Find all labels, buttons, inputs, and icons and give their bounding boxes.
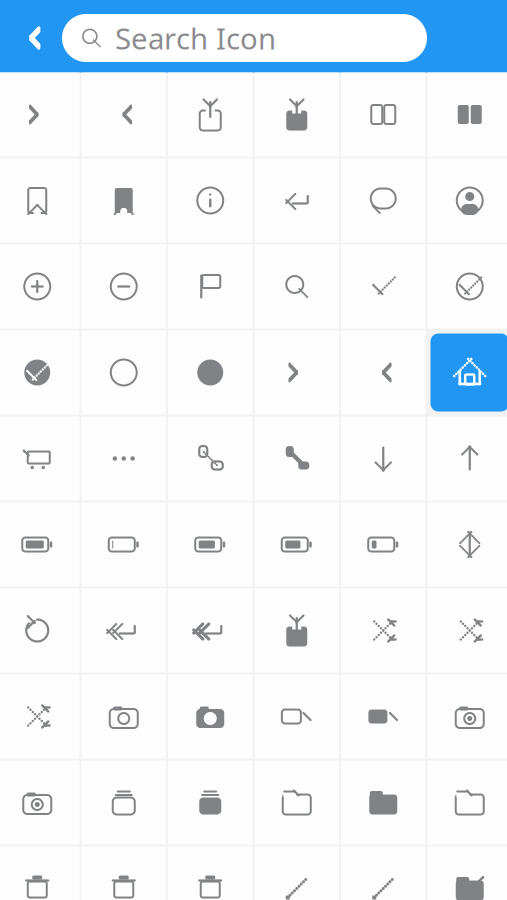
button[interactable]: Camera <box>0 760 79 844</box>
button[interactable]: Chevron left <box>254 330 339 414</box>
button[interactable]: Refresh <box>0 588 79 672</box>
button[interactable]: More <box>81 416 166 500</box>
button[interactable]: Folder <box>427 760 507 844</box>
button[interactable]: Share <box>254 72 339 156</box>
button[interactable]: Shuffle <box>341 588 425 672</box>
button[interactable]: Flag <box>168 244 252 328</box>
button[interactable]: Phone <box>168 416 252 500</box>
button[interactable]: Book <box>427 72 507 156</box>
button[interactable]: Battery <box>341 502 425 586</box>
button[interactable]: Bookmark <box>0 158 79 242</box>
button[interactable]: Reply <box>254 158 339 242</box>
button[interactable]: Arrow down <box>341 416 425 500</box>
button[interactable]: Folder <box>254 760 339 844</box>
button[interactable]: Arrow up <box>427 416 507 500</box>
button[interactable]: Bookmark <box>81 158 166 242</box>
button[interactable]: Phone <box>254 416 339 500</box>
button[interactable]: Cart <box>0 416 79 500</box>
button[interactable]: Share <box>168 72 252 156</box>
button[interactable]: Trash <box>168 846 252 900</box>
button[interactable]: Info <box>168 158 252 242</box>
button[interactable]: Battery <box>81 502 166 586</box>
button[interactable]: Chevron right <box>81 72 166 156</box>
button[interactable]: Edit <box>341 846 425 900</box>
button[interactable]: Bluetooth <box>427 502 507 586</box>
button[interactable]: Book <box>341 72 425 156</box>
button[interactable]: Profile <box>427 158 507 242</box>
button[interactable]: Camera <box>168 674 252 758</box>
button[interactable]: Remove <box>81 244 166 328</box>
button[interactable]: Shuffle <box>427 588 507 672</box>
button[interactable]: Search Icon <box>62 14 427 62</box>
button[interactable]: Battery <box>168 502 252 586</box>
button[interactable]: Trash <box>81 846 166 900</box>
button[interactable]: Circle <box>168 330 252 414</box>
button[interactable]: Video <box>254 674 339 758</box>
button[interactable]: Chevron left <box>0 72 79 156</box>
button[interactable]: Add <box>0 244 79 328</box>
button[interactable]: Battery <box>0 502 79 586</box>
button[interactable]: Shuffle <box>0 674 79 758</box>
button[interactable]: Camera <box>81 674 166 758</box>
button[interactable]: Edit <box>254 846 339 900</box>
button[interactable]: Circle <box>81 330 166 414</box>
button[interactable]: Check <box>0 330 79 414</box>
button[interactable]: Search <box>254 244 339 328</box>
button[interactable]: Archive <box>168 760 252 844</box>
button[interactable]: Archive <box>81 760 166 844</box>
button[interactable]: Video <box>341 674 425 758</box>
button[interactable]: Check <box>341 244 425 328</box>
button[interactable]: Folder <box>341 760 425 844</box>
button[interactable]: Edit folder <box>427 846 507 900</box>
button[interactable]: Reply all <box>168 588 252 672</box>
button[interactable]: Trash <box>0 846 79 900</box>
button[interactable]: Reply all <box>81 588 166 672</box>
button[interactable]: Home <box>427 330 507 414</box>
button[interactable]: Chevron right <box>341 330 425 414</box>
button[interactable]: Battery <box>254 502 339 586</box>
staticText: Search Icon <box>115 18 276 57</box>
button[interactable]: Comment <box>341 158 425 242</box>
button[interactable]: Camera <box>427 674 507 758</box>
button[interactable]: Check <box>427 244 507 328</box>
button[interactable]: Back <box>0 7 62 69</box>
button[interactable]: Share <box>254 588 339 672</box>
